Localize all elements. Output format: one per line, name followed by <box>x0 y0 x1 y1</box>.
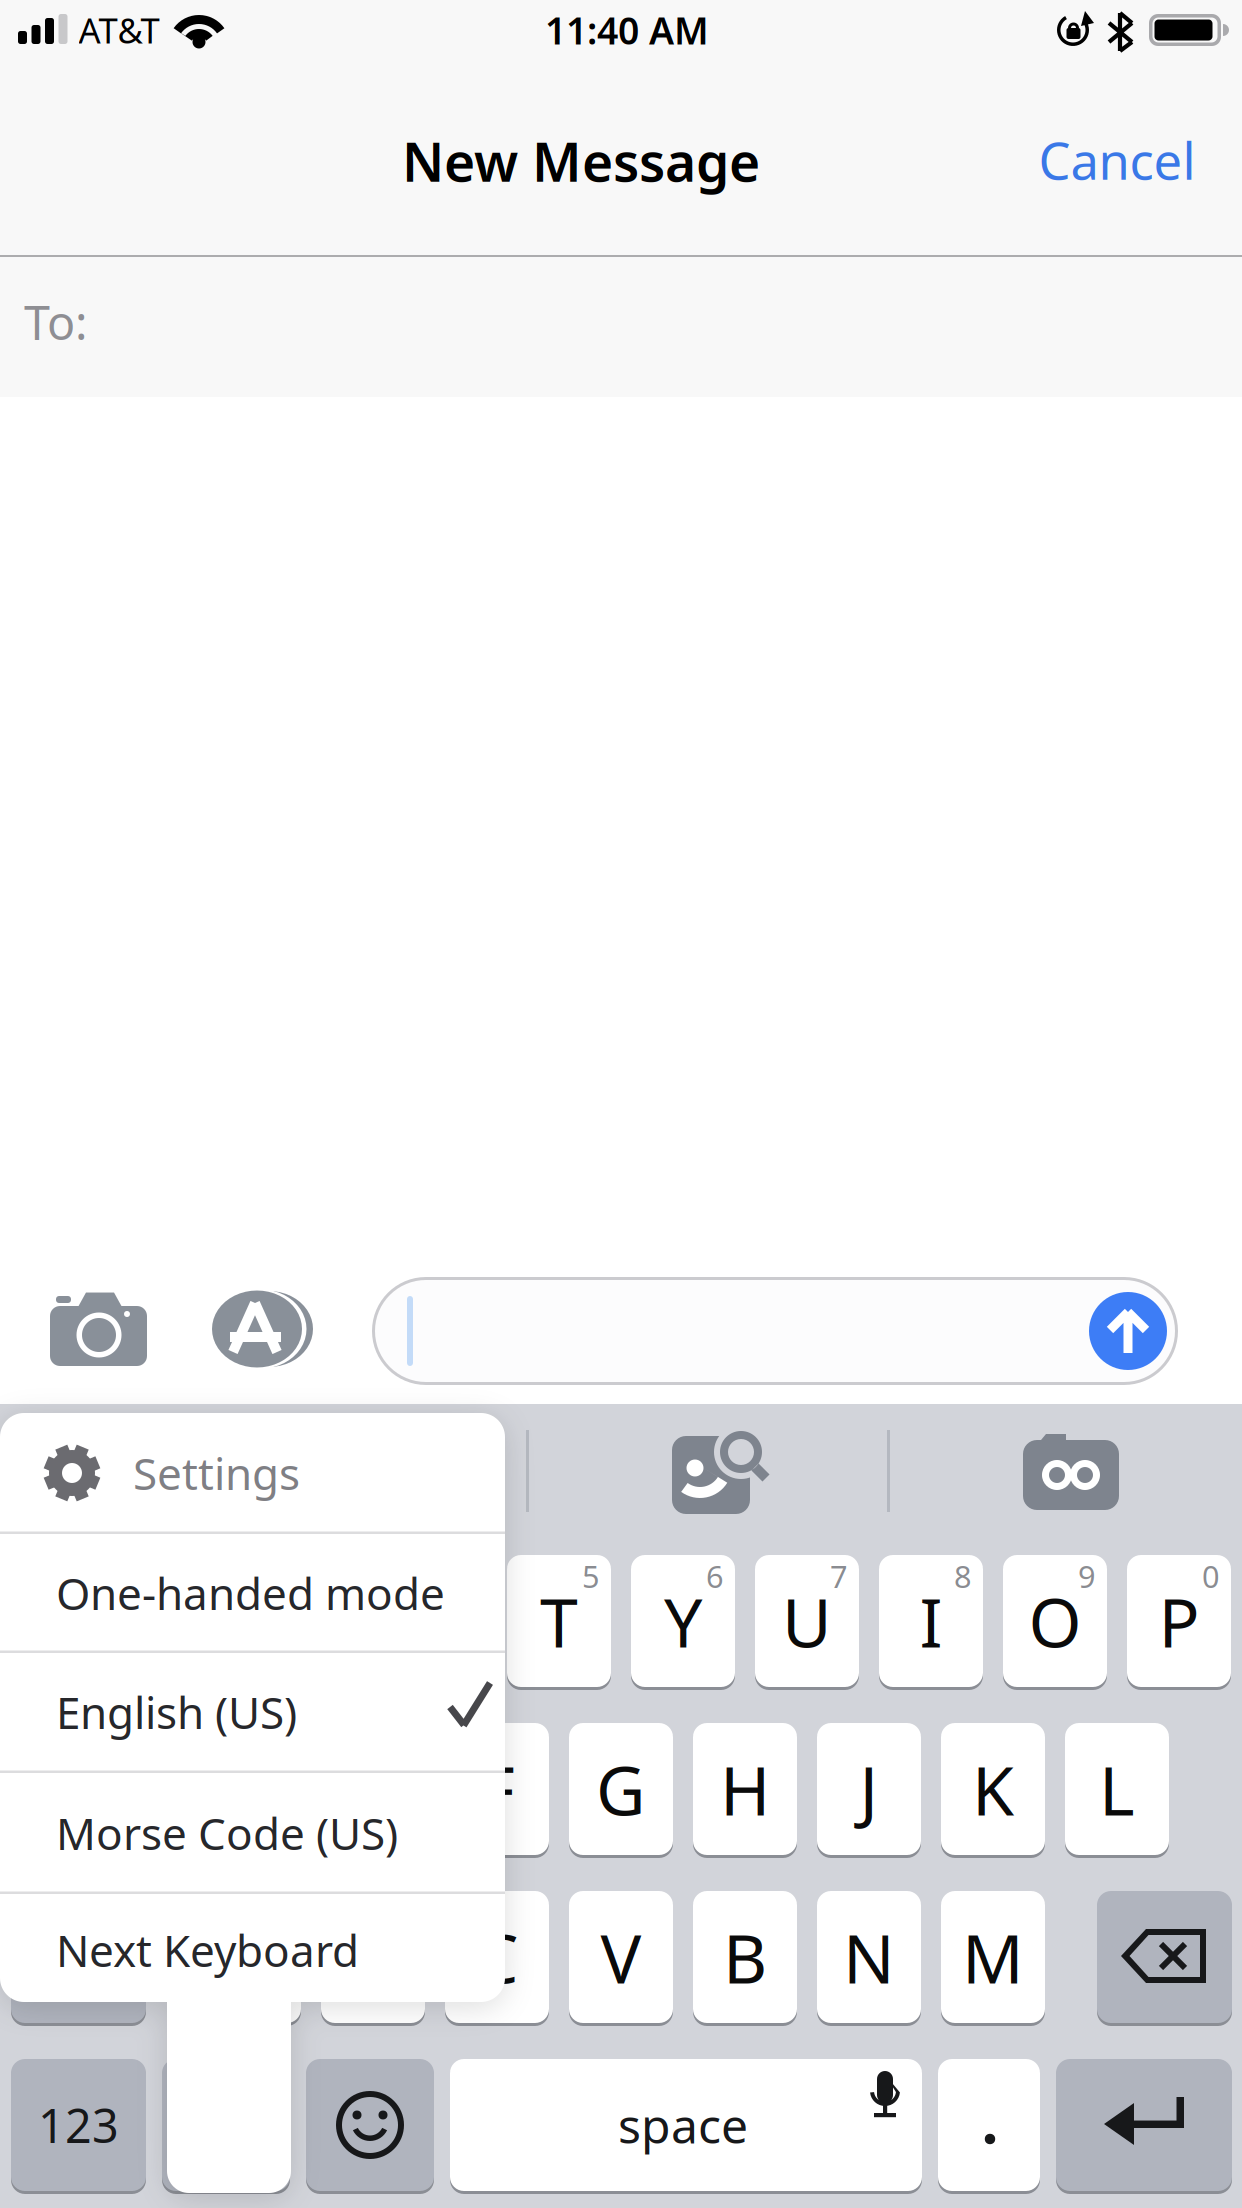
staticText: T <box>540 1576 578 1666</box>
staticText: 2 <box>210 1556 228 1596</box>
button[interactable]: GIF search <box>1011 1418 1131 1528</box>
button[interactable]: N <box>817 1891 921 2023</box>
staticText: D <box>348 1744 398 1834</box>
button[interactable]: T <box>507 1555 611 1687</box>
staticText: 1 <box>86 1556 104 1596</box>
button[interactable]: J <box>817 1723 921 1855</box>
button[interactable]: X <box>321 1891 425 2023</box>
staticText: 5 <box>582 1556 600 1596</box>
staticText: E <box>292 1576 330 1666</box>
staticText: O <box>1028 1576 1081 1666</box>
staticText: C <box>475 1912 518 2002</box>
staticText: S <box>230 1744 267 1834</box>
staticText: Settings <box>133 1444 300 1502</box>
staticText: H <box>720 1744 770 1834</box>
staticText: space <box>618 2093 748 2157</box>
button[interactable]: I <box>879 1555 983 1687</box>
staticText: F <box>479 1744 514 1834</box>
button[interactable]: Y <box>631 1555 735 1687</box>
button[interactable]: Message field <box>372 1277 1178 1385</box>
staticText: AT&T <box>78 7 159 53</box>
staticText: A <box>103 1744 146 1834</box>
button[interactable]: Next Keyboard <box>0 0 1242 2208</box>
staticText: 3 <box>334 1556 352 1596</box>
button[interactable]: Settings <box>0 0 1242 2208</box>
button[interactable]: Camera <box>41 1281 157 1377</box>
staticText: Cancel <box>1038 126 1195 194</box>
button[interactable]: Return <box>1056 2059 1232 2191</box>
staticText: English (US) <box>56 1683 297 1741</box>
staticText: Morse Code (US) <box>56 1804 398 1862</box>
button[interactable]: H <box>693 1723 797 1855</box>
button[interactable]: Emoji <box>306 2059 434 2191</box>
button[interactable]: F <box>445 1723 549 1855</box>
staticText: 6 <box>706 1556 724 1596</box>
button[interactable]: D <box>321 1723 425 1855</box>
button[interactable]: Period <box>938 2059 1040 2191</box>
staticText: 11:40 AM <box>545 5 709 55</box>
button[interactable]: Send <box>1086 1289 1170 1373</box>
staticText: X <box>353 1912 393 2002</box>
button[interactable]: Delete <box>1097 1891 1232 2023</box>
button[interactable]: English (US) <box>0 0 1242 2208</box>
staticText: 123 <box>38 2094 119 2156</box>
staticText: New Message <box>402 126 760 196</box>
button[interactable]: A <box>73 1723 177 1855</box>
button[interactable]: S <box>197 1723 301 1855</box>
button[interactable]: space <box>447 2059 919 2191</box>
staticText: 0 <box>1202 1556 1220 1596</box>
staticText: J <box>859 1744 878 1834</box>
button[interactable]: W <box>135 1555 239 1687</box>
staticText: B <box>723 1912 767 2002</box>
staticText: Next Keyboard <box>56 1921 359 1979</box>
staticText: Z <box>229 1912 268 2002</box>
staticText: G <box>596 1744 646 1834</box>
button[interactable]: M <box>941 1891 1045 2023</box>
button[interactable]: 123 <box>11 2059 146 2191</box>
staticText: 8 <box>954 1556 972 1596</box>
staticText: L <box>1099 1744 1135 1834</box>
staticText: Y <box>664 1576 702 1666</box>
staticText: I <box>919 1576 942 1666</box>
button[interactable]: Cancel <box>1007 110 1227 210</box>
button[interactable]: To: <box>0 257 1242 397</box>
button[interactable]: G <box>569 1723 673 1855</box>
staticText: One-handed mode <box>56 1564 445 1622</box>
button[interactable]: L <box>1065 1723 1169 1855</box>
staticText: To: <box>24 291 88 353</box>
staticText: W <box>155 1576 218 1666</box>
staticText: P <box>1158 1576 1199 1666</box>
button[interactable]: B <box>693 1891 797 2023</box>
button[interactable]: R <box>383 1555 487 1687</box>
staticText: V <box>600 1912 641 2002</box>
button[interactable]: Morse Code (US) <box>0 0 1242 2208</box>
button[interactable]: Z <box>197 1891 301 2023</box>
button[interactable]: One-handed mode <box>0 0 1242 2208</box>
staticText: R <box>414 1576 456 1666</box>
button[interactable]: C <box>445 1891 549 2023</box>
staticText: U <box>782 1576 832 1666</box>
button[interactable]: K <box>941 1723 1045 1855</box>
staticText: Q <box>36 1576 89 1666</box>
staticText: K <box>972 1744 1014 1834</box>
staticText: 7 <box>830 1556 848 1596</box>
button[interactable]: Q <box>11 1555 115 1687</box>
staticText: 9 <box>1078 1556 1096 1596</box>
button[interactable]: P <box>1127 1555 1231 1687</box>
staticText: N <box>843 1912 895 2002</box>
staticText: M <box>962 1912 1024 2002</box>
button[interactable]: Image search <box>651 1418 771 1528</box>
button[interactable]: U <box>755 1555 859 1687</box>
button[interactable]: Apps <box>206 1284 318 1374</box>
button[interactable]: E <box>259 1555 363 1687</box>
button[interactable]: V <box>569 1891 673 2023</box>
button[interactable]: O <box>1003 1555 1107 1687</box>
